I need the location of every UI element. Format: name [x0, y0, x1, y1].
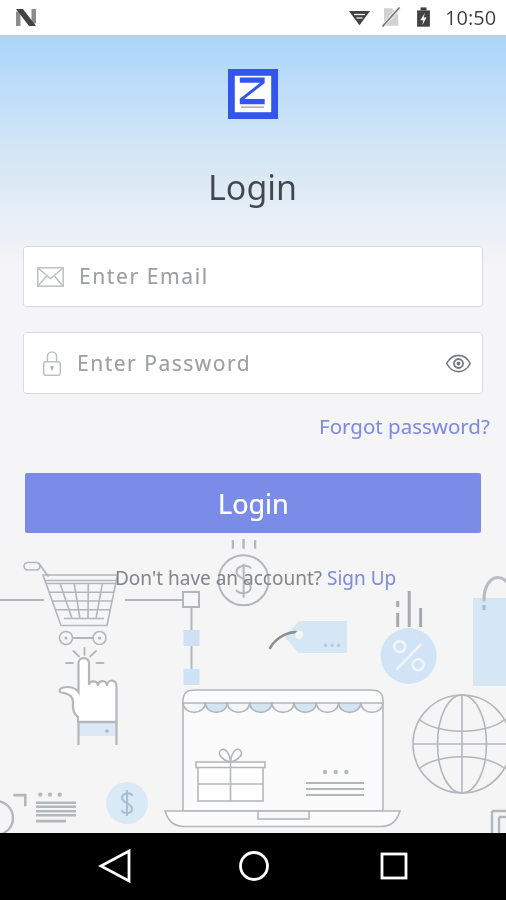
staticText: Login	[208, 164, 298, 210]
staticText: Enter Email	[79, 262, 209, 291]
staticText: Enter Password	[77, 349, 252, 378]
button[interactable]: Login	[25, 473, 481, 533]
button[interactable]: Enter Password	[23, 332, 483, 394]
staticText: Don't have an account? Sign Up	[115, 565, 397, 591]
button[interactable]: Show password	[440, 345, 476, 381]
staticText: Login	[218, 485, 289, 522]
staticText: Forgot password?	[319, 412, 490, 440]
staticText: 10:50	[445, 4, 497, 31]
button[interactable]: Enter Email	[23, 246, 483, 307]
button[interactable]: Don't have an account? Sign Up	[3, 565, 506, 591]
button[interactable]: Forgot password?	[319, 412, 490, 440]
